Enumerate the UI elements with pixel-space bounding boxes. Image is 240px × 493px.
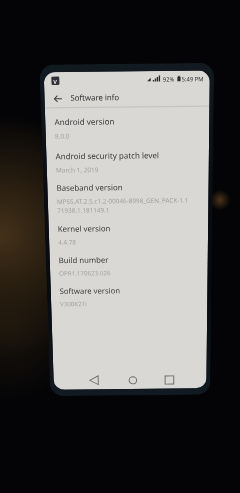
staticText: 5:49 PM <box>182 75 205 84</box>
button[interactable]: Navigate up <box>50 91 64 105</box>
staticText: Android security patch level <box>55 150 160 162</box>
button[interactable]: Back <box>85 372 103 388</box>
staticText: Software version <box>59 286 121 297</box>
button[interactable]: Build number <box>50 253 208 282</box>
button[interactable]: Kernel version <box>48 221 208 250</box>
staticText: 4.4.78 <box>58 237 76 246</box>
staticText: OPR1.170623.026 <box>59 268 112 278</box>
staticText: Kernel version <box>58 223 111 235</box>
staticText: 71938.1.181149.1 <box>57 205 110 215</box>
staticText: Baseband version <box>56 182 123 194</box>
button[interactable]: Recent apps <box>160 371 178 388</box>
staticText: Build number <box>58 255 109 266</box>
button[interactable]: Home <box>124 372 141 388</box>
button[interactable]: Baseband version <box>47 180 209 219</box>
button[interactable]: Android version <box>45 114 209 145</box>
staticText: Android version <box>54 116 115 128</box>
button[interactable]: Software version <box>51 284 207 312</box>
staticText: V300K21i <box>60 299 88 308</box>
staticText: March 1, 2019 <box>56 165 99 175</box>
staticText: 8.0.0 <box>55 131 70 141</box>
staticText: V <box>53 77 58 85</box>
staticText: 92% <box>163 75 175 84</box>
staticText: MPSS.AT.2.5.c1.2-00046-8998_GEN_PACK-1.1 <box>57 195 189 206</box>
button[interactable]: Android security patch level <box>46 148 209 179</box>
staticText: Software info <box>70 92 119 103</box>
